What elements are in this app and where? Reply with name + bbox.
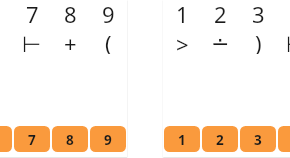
button[interactable]: 8 [52, 126, 88, 152]
staticText: 2 [216, 131, 224, 149]
staticText: 8 [66, 131, 74, 149]
staticText: 3 [252, 0, 265, 25]
button[interactable]: 1 [0, 126, 12, 152]
staticText: 1 [176, 0, 189, 25]
staticText: ( [105, 28, 112, 54]
staticText: 8 [64, 0, 77, 25]
staticText: + [64, 28, 77, 54]
staticText: 7 [26, 0, 39, 25]
button[interactable]: 7 [14, 126, 50, 152]
staticText: ) [255, 28, 262, 54]
staticText: 2 [214, 0, 227, 25]
button[interactable]: 3 [240, 126, 276, 152]
button[interactable]: 1 [164, 126, 200, 152]
staticText: ⊢ [286, 32, 290, 58]
staticText: > [176, 29, 189, 55]
staticText: 1 [178, 131, 186, 149]
staticText: ∸ [211, 31, 230, 57]
staticText: ⊢ [22, 32, 42, 58]
button[interactable]: 4 [278, 126, 290, 152]
button[interactable]: 2 [202, 126, 238, 152]
staticText: 7 [28, 131, 36, 149]
button[interactable]: 9 [90, 126, 126, 152]
staticText: 9 [104, 131, 112, 149]
staticText: 3 [254, 131, 262, 149]
staticText: 9 [102, 0, 115, 25]
